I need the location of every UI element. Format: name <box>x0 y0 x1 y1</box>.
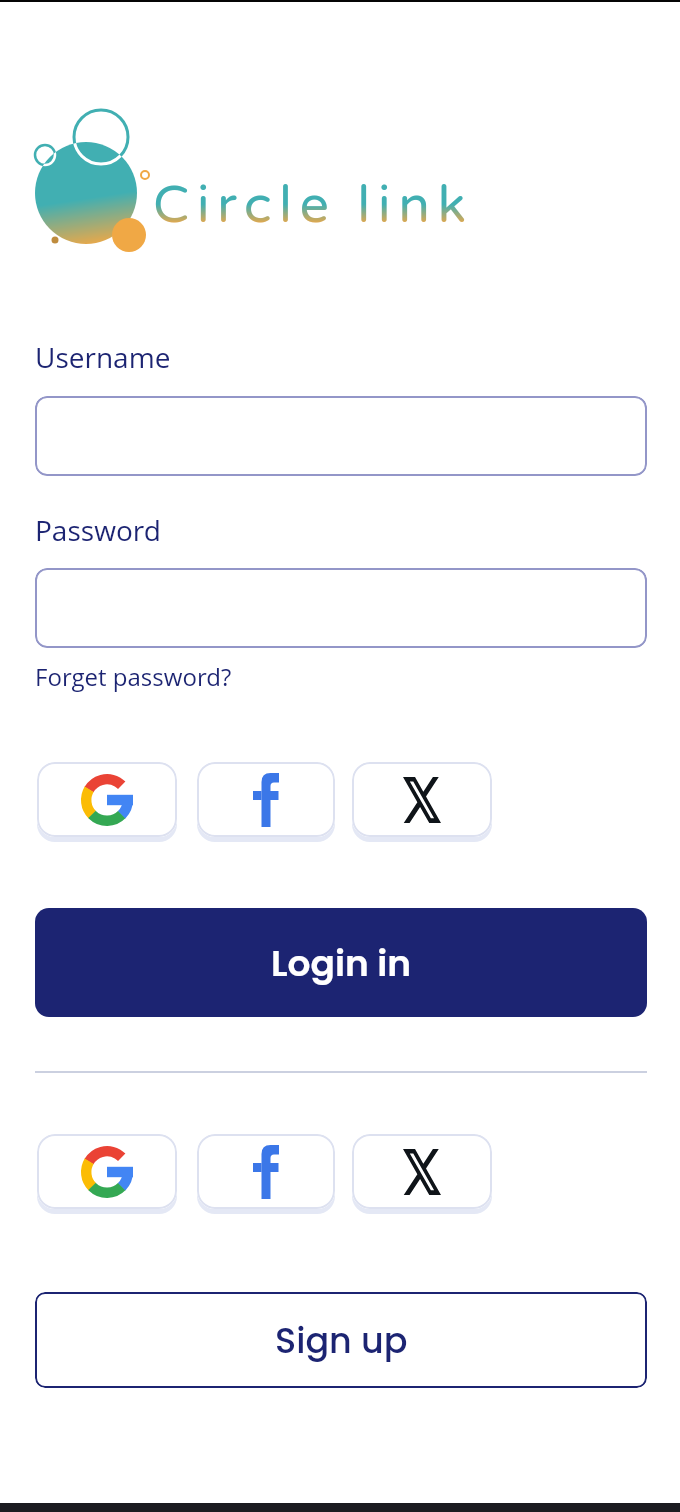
button[interactable] <box>197 1134 335 1209</box>
staticText: Login in <box>271 938 412 988</box>
button[interactable]: Login in <box>35 908 647 1017</box>
button[interactable] <box>197 762 335 837</box>
staticText: Circle link <box>153 174 474 237</box>
button[interactable] <box>37 762 177 837</box>
button[interactable] <box>35 396 647 476</box>
button[interactable] <box>352 1134 492 1209</box>
button[interactable] <box>37 1134 177 1209</box>
button[interactable] <box>352 762 492 837</box>
staticText: Sign up <box>275 1316 408 1365</box>
staticText: Password <box>35 511 161 549</box>
button[interactable]: Sign up <box>35 1292 647 1388</box>
button[interactable]: Forget password? <box>35 660 232 693</box>
staticText: Username <box>35 338 171 376</box>
button[interactable] <box>35 568 647 648</box>
